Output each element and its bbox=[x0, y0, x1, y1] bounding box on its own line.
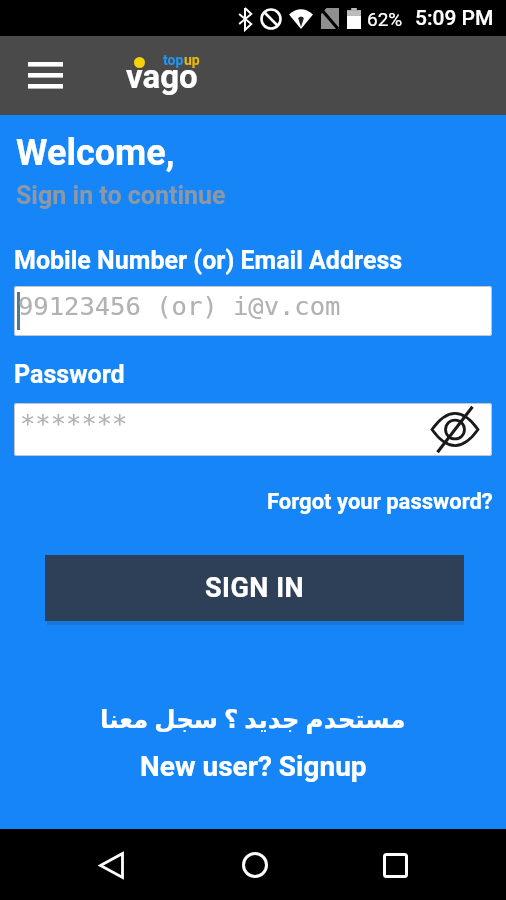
button[interactable]: 99123456 (or) i@v.com bbox=[14, 286, 492, 336]
button[interactable]: vago bbox=[126, 40, 198, 79]
staticText: Sign in to continue bbox=[16, 181, 226, 210]
staticText: 5:09 PM bbox=[415, 6, 494, 31]
button[interactable] bbox=[215, 835, 295, 895]
staticText: SIGN IN bbox=[205, 572, 305, 604]
button[interactable]: ******* bbox=[14, 403, 492, 456]
staticText: Password bbox=[14, 360, 125, 389]
button[interactable] bbox=[28, 62, 63, 89]
staticText: up bbox=[184, 52, 200, 68]
staticText: 62% bbox=[367, 8, 403, 30]
staticText: مستحدم جديد ؟ سجل معنا bbox=[100, 705, 406, 734]
button[interactable]: Forgot your password? bbox=[267, 489, 493, 515]
button[interactable] bbox=[432, 412, 478, 447]
staticText: ******* bbox=[20, 408, 128, 438]
staticText: vago bbox=[126, 57, 198, 96]
button[interactable] bbox=[71, 835, 151, 895]
button[interactable]: New user? Signup bbox=[140, 750, 367, 783]
staticText: Mobile Number (or) Email Address bbox=[14, 246, 403, 275]
staticText: 99123456 (or) i@v.com bbox=[18, 291, 341, 321]
button[interactable]: SIGN IN bbox=[45, 555, 464, 621]
staticText: top bbox=[163, 52, 184, 68]
staticText: Welcome, bbox=[16, 132, 175, 174]
button[interactable] bbox=[355, 835, 435, 895]
